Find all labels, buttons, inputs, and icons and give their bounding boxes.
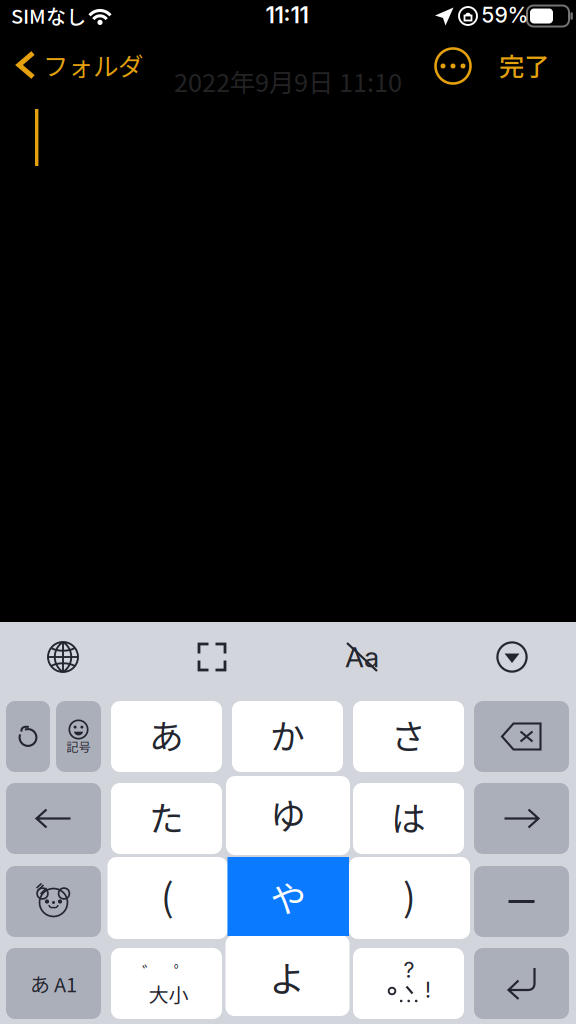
button[interactable]: Next keyboard: [28, 624, 98, 690]
staticText: ゛: [142, 959, 159, 984]
staticText: や: [270, 870, 306, 922]
button[interactable]: か: [232, 701, 343, 772]
staticText: ): [403, 868, 416, 922]
button[interactable]: Scan text: [177, 624, 247, 690]
button[interactable]: Hide keyboard: [477, 624, 547, 690]
staticText: か: [270, 709, 305, 760]
button[interactable]: [6, 866, 101, 937]
button[interactable]: さ: [353, 701, 464, 772]
staticText: ゜: [174, 959, 191, 984]
button[interactable]: あ A1: [6, 948, 101, 1019]
staticText: よ: [269, 950, 305, 1002]
staticText: 完了: [499, 47, 549, 83]
staticText: あ: [149, 709, 184, 760]
button[interactable]: フォルダ: [13, 41, 158, 89]
button[interactable]: [6, 783, 101, 854]
button[interactable]: 完了: [488, 41, 560, 89]
button[interactable]: (: [107, 857, 227, 939]
staticText: ゆ: [270, 787, 306, 839]
button[interactable]: ): [349, 857, 470, 939]
button[interactable]: ?: [353, 948, 464, 1019]
staticText: 記号: [66, 738, 90, 755]
staticText: (: [161, 868, 174, 922]
staticText: ?: [403, 957, 414, 983]
button[interactable]: [474, 783, 569, 854]
button[interactable]: [6, 701, 50, 772]
button[interactable]: [474, 701, 569, 772]
staticText: た: [149, 791, 184, 842]
staticText: さ: [391, 709, 426, 760]
button[interactable]: ゆ: [226, 776, 350, 855]
button[interactable]: 記号: [56, 701, 101, 772]
button[interactable]: は: [353, 783, 464, 854]
button[interactable]: あ: [111, 701, 222, 772]
button[interactable]: ゛: [111, 948, 222, 1019]
button[interactable]: よ: [225, 935, 349, 1016]
staticText: 2022年9月9日 11:10: [174, 63, 402, 99]
staticText: SIMなし: [11, 0, 86, 29]
button[interactable]: More options: [433, 46, 473, 86]
button[interactable]: [474, 866, 569, 937]
button[interactable]: Text formatting: [327, 624, 397, 690]
staticText: 59%: [481, 2, 528, 28]
button[interactable]: や: [227, 857, 349, 936]
staticText: 11:11: [265, 1, 308, 29]
button[interactable]: た: [111, 783, 222, 854]
staticText: あ A1: [30, 969, 77, 998]
staticText: は: [391, 791, 426, 842]
staticText: フォルダ: [43, 47, 143, 83]
button[interactable]: [474, 948, 569, 1019]
staticText: 大小: [148, 979, 188, 1008]
staticText: !: [425, 977, 431, 1003]
staticText: Aa: [345, 640, 379, 674]
